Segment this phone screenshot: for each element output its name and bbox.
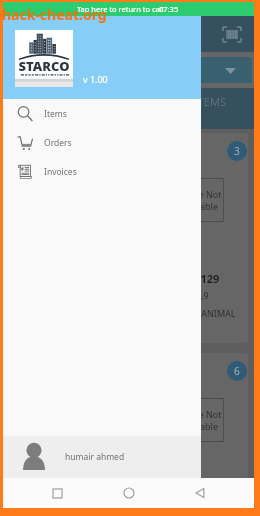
button[interactable]: Image Not Available	[9, 353, 248, 478]
staticText: Price : 1,9	[168, 289, 209, 301]
button[interactable]: Invoices	[3, 157, 201, 186]
button[interactable]: 3	[227, 141, 247, 161]
button[interactable]: Home	[112, 478, 146, 508]
button[interactable]: Orders	[3, 128, 201, 157]
staticText: humair ahmed	[65, 451, 125, 463]
staticText: Orders	[44, 137, 72, 149]
staticText: Image Not Available	[176, 408, 222, 432]
button[interactable]: Image Not Available	[9, 133, 248, 343]
button[interactable]: Back	[183, 478, 217, 508]
staticText: Items	[44, 108, 67, 120]
staticText: hack-cheat.org	[2, 5, 107, 24]
button[interactable]: humair ahmed	[3, 436, 201, 478]
button[interactable]: Open navigation drawer	[13, 24, 33, 44]
staticText: 07:35	[159, 4, 179, 14]
staticText: Image Not Available	[176, 188, 222, 212]
staticText: Item Code : 129	[135, 271, 220, 286]
staticText: 3	[234, 144, 240, 158]
staticText: FEED / ANIMAL	[172, 307, 236, 319]
staticText: v 1.00	[83, 73, 108, 85]
staticText: STARCO	[18, 57, 70, 75]
staticText: 6	[234, 364, 240, 378]
staticText: Tap here to return to call	[77, 4, 164, 14]
button[interactable]: Scan barcode	[222, 24, 242, 44]
staticText: Invoices	[44, 166, 77, 178]
button[interactable]: 6	[227, 361, 247, 381]
button[interactable]: Recents	[40, 478, 74, 508]
staticText: ITEMS	[194, 94, 226, 109]
button[interactable]: Items	[3, 99, 201, 128]
button[interactable]	[9, 57, 252, 83]
